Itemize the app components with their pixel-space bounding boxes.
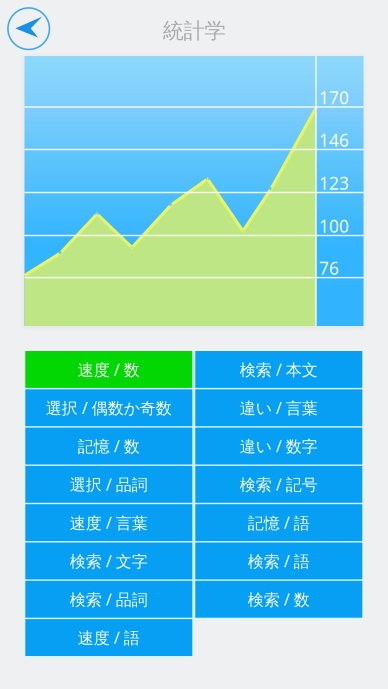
staticText: 統計学 [162, 18, 225, 44]
staticText: 速度 / 語 [78, 627, 140, 648]
button[interactable]: 検索 / 数 [195, 581, 362, 618]
button[interactable]: 記憶 / 語 [195, 504, 362, 541]
staticText: 違い / 言葉 [240, 397, 318, 418]
button[interactable]: 検索 / 語 [195, 542, 362, 579]
staticText: 違い / 数字 [240, 435, 318, 457]
staticText: 検索 / 記号 [240, 474, 318, 495]
button[interactable]: 速度 / 語 [25, 619, 192, 656]
staticText: 76 [319, 257, 339, 280]
staticText: 検索 / 文字 [70, 550, 148, 571]
button[interactable]: 速度 / 数 [25, 351, 192, 388]
button[interactable]: 選択 / 偶数か奇数 [25, 389, 192, 426]
button[interactable]: 違い / 言葉 [195, 389, 362, 426]
button[interactable]: 記憶 / 数 [25, 428, 192, 464]
staticText: 記憶 / 語 [248, 512, 310, 533]
button[interactable]: 選択 / 品詞 [25, 466, 192, 503]
staticText: 123 [319, 171, 349, 194]
button[interactable]: 検索 / 品詞 [25, 581, 192, 618]
staticText: 検索 / 数 [248, 589, 310, 610]
staticText: 100 [319, 214, 349, 237]
button[interactable]: Back [2, 2, 56, 56]
button[interactable]: 違い / 数字 [195, 428, 362, 464]
staticText: 選択 / 品詞 [70, 474, 148, 495]
staticText: 記憶 / 数 [78, 435, 140, 457]
staticText: 170 [319, 86, 349, 109]
staticText: 選択 / 偶数か奇数 [46, 397, 172, 418]
button[interactable]: 速度 / 言葉 [25, 504, 192, 541]
staticText: 146 [319, 128, 349, 151]
staticText: 速度 / 数 [78, 359, 140, 380]
button[interactable]: 検索 / 本文 [195, 351, 362, 388]
staticText: 検索 / 品詞 [70, 589, 148, 610]
staticText: 速度 / 言葉 [70, 512, 148, 533]
button[interactable]: 検索 / 文字 [25, 542, 192, 579]
button[interactable]: 検索 / 記号 [195, 466, 362, 503]
staticText: 検索 / 本文 [240, 359, 318, 380]
staticText: 検索 / 語 [248, 550, 310, 571]
